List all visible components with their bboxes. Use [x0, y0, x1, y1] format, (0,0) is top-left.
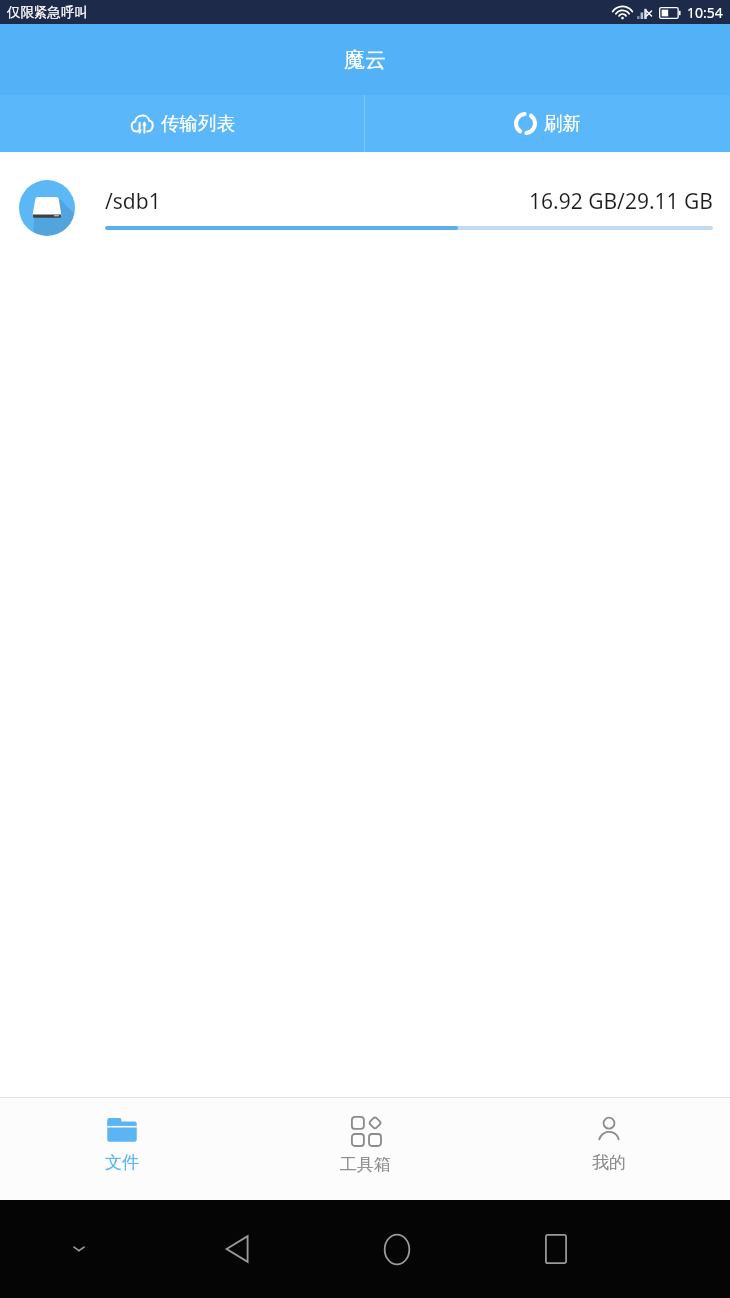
staticText: 工具箱 [340, 1154, 391, 1175]
button[interactable]: /sdb1 [0, 168, 730, 248]
button[interactable]: 刷新 [365, 95, 730, 152]
button[interactable]: 传输列表 [0, 95, 364, 152]
button[interactable]: 工具箱 [244, 1098, 487, 1200]
staticText: 传输列表 [161, 112, 235, 135]
staticText: 10:54 [687, 3, 723, 22]
staticText: 魔云 [344, 47, 386, 73]
button[interactable]: 文件 [0, 1098, 244, 1200]
staticText: 文件 [105, 1152, 139, 1173]
button[interactable]: Home [317, 1200, 476, 1298]
staticText: /sdb1 [105, 187, 161, 216]
button[interactable]: Back [158, 1200, 317, 1298]
button[interactable]: Hide keyboard [0, 1200, 158, 1298]
button[interactable]: Recent apps [476, 1200, 635, 1298]
staticText: 16.92 GB/29.11 GB [529, 187, 713, 216]
button[interactable]: 我的 [487, 1098, 730, 1200]
staticText: 我的 [592, 1152, 626, 1173]
staticText: 仅限紧急呼叫 [7, 4, 88, 21]
staticText: 刷新 [544, 112, 581, 135]
